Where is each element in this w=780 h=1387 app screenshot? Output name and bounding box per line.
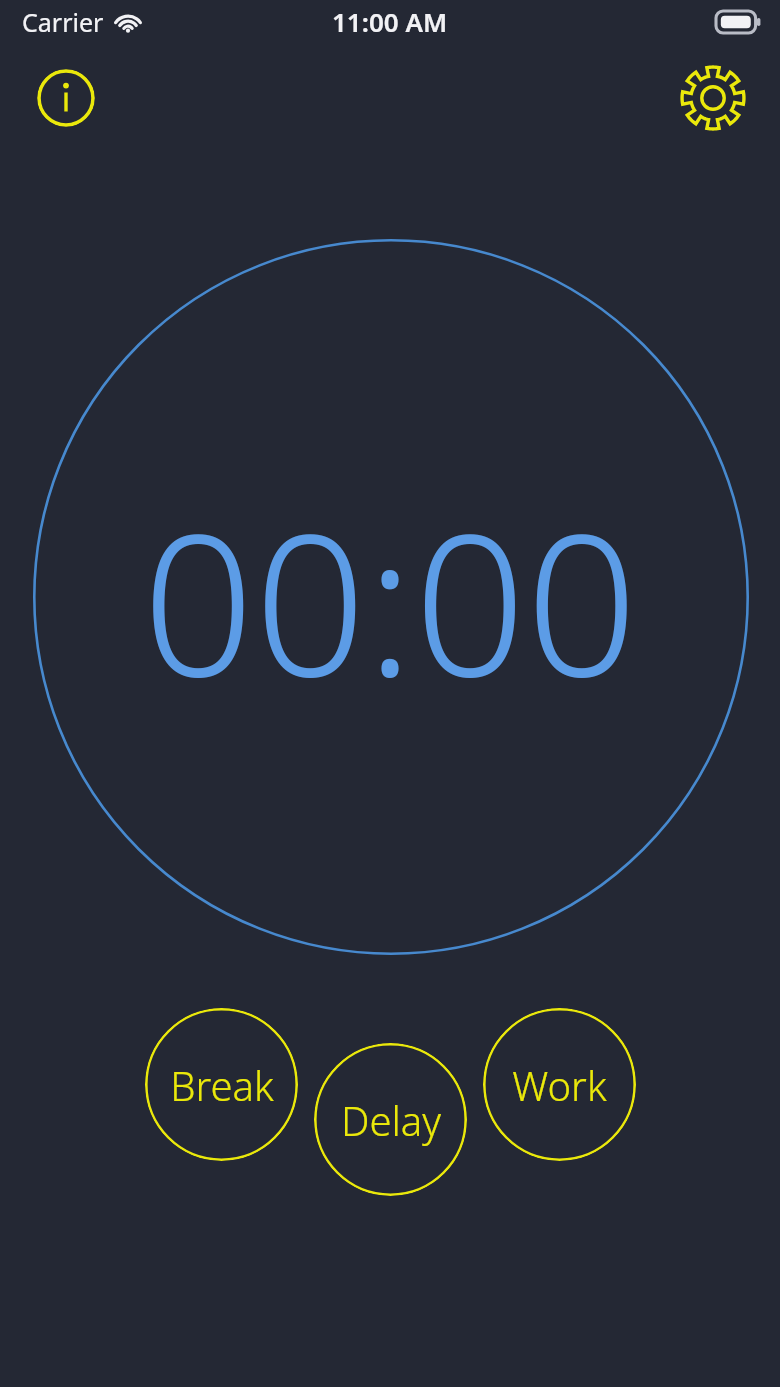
- button[interactable]: Settings: [679, 64, 747, 132]
- staticText: 00:00: [142, 466, 638, 732]
- button[interactable]: Work: [483, 1008, 636, 1161]
- button[interactable]: Delay: [314, 1043, 467, 1196]
- staticText: Break: [170, 1058, 274, 1112]
- button[interactable]: Info: [37, 69, 95, 127]
- staticText: Carrier: [22, 5, 104, 39]
- staticText: Delay: [341, 1093, 441, 1147]
- staticText: Work: [512, 1058, 607, 1112]
- button[interactable]: Break: [145, 1008, 298, 1161]
- staticText: 11:00 AM: [332, 4, 448, 39]
